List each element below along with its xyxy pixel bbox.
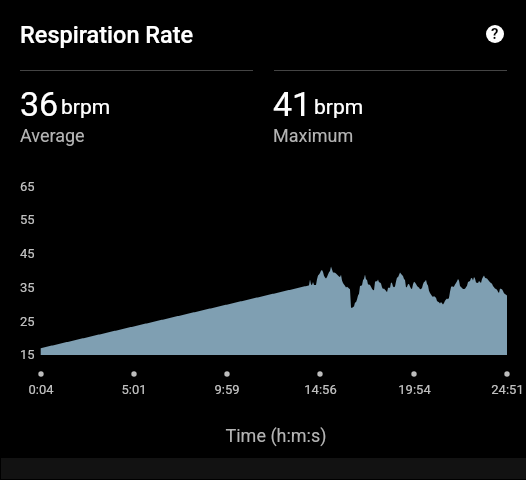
staticText: 25 [20, 314, 35, 329]
staticText: 0:04 [28, 382, 54, 397]
staticText: brpm [61, 95, 111, 120]
staticText: 45 [20, 246, 35, 261]
staticText: 9:59 [214, 382, 240, 397]
staticText: 5:01 [121, 382, 147, 397]
staticText: 19:54 [398, 382, 431, 397]
staticText: 36 [20, 84, 59, 124]
button[interactable]: 41 [273, 84, 364, 146]
button[interactable]: Respiration Rate [20, 21, 194, 49]
button[interactable]: 36 [20, 84, 111, 146]
staticText: 55 [20, 212, 35, 227]
button[interactable]: Help [481, 20, 509, 48]
staticText: Average [20, 125, 85, 146]
staticText: Maximum [273, 125, 354, 146]
staticText: 24:51 [491, 382, 524, 397]
staticText: 65 [20, 179, 35, 194]
staticText: 15 [20, 347, 35, 362]
staticText: 14:56 [304, 382, 337, 397]
staticText: 35 [20, 280, 35, 295]
staticText: 41 [273, 84, 312, 124]
staticText: brpm [314, 95, 364, 120]
staticText: Respiration Rate [20, 21, 194, 49]
staticText: ? [491, 25, 499, 43]
staticText: Time (h:m:s) [225, 425, 327, 446]
